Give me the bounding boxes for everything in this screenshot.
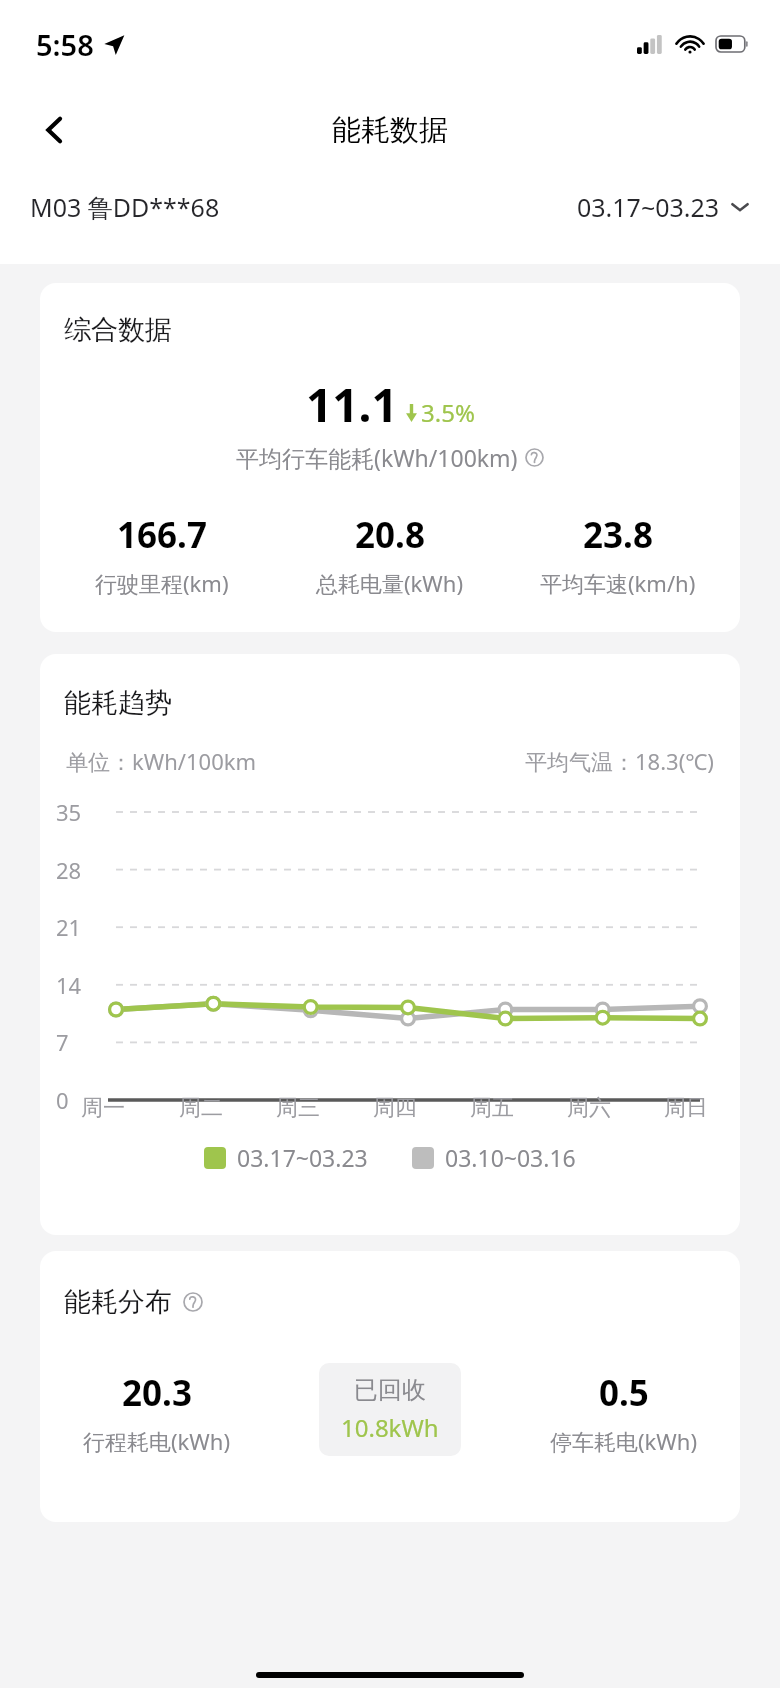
staticText: 7: [56, 1027, 69, 1057]
staticText: 周六: [567, 1094, 611, 1122]
staticText: 28: [56, 855, 82, 885]
staticText: 5:58: [36, 25, 94, 64]
staticText: 平均气温：18.3(℃): [525, 746, 714, 776]
staticText: 周日: [664, 1094, 708, 1122]
staticText: 已回收: [354, 1375, 426, 1405]
staticText: 周二: [179, 1094, 223, 1122]
staticText: 20.8: [355, 511, 425, 559]
staticText: 周四: [373, 1094, 417, 1122]
staticText: M03 鲁DD***68: [30, 190, 220, 224]
staticText: 3.5%: [421, 396, 475, 429]
staticText: 能耗趋势: [64, 686, 172, 720]
staticText: 平均行车能耗(kWh/100km): [236, 442, 518, 473]
staticText: 0.5: [599, 1369, 649, 1417]
staticText: 166.7: [117, 511, 207, 559]
staticText: 周五: [470, 1094, 514, 1122]
staticText: 单位：kWh/100km: [66, 746, 257, 776]
staticText: 23.8: [583, 511, 653, 559]
staticText: 行程耗电(kWh): [83, 1426, 231, 1456]
staticText: 03.17~03.23: [237, 1142, 368, 1173]
button[interactable]: 03.10~03.16: [412, 1142, 576, 1173]
staticText: 14: [56, 970, 82, 1000]
staticText: 总耗电量(kWh): [316, 568, 464, 598]
staticText: 03.17~03.23: [577, 190, 720, 224]
button[interactable]: Back: [26, 101, 84, 159]
staticText: 10.8kWh: [341, 1411, 439, 1444]
staticText: 03.10~03.16: [445, 1142, 576, 1173]
staticText: 周一: [81, 1094, 125, 1122]
staticText: 0: [56, 1085, 69, 1115]
staticText: 能耗分布: [64, 1285, 172, 1319]
staticText: 20.3: [122, 1369, 192, 1417]
staticText: 周三: [276, 1094, 320, 1122]
staticText: 平均车速(km/h): [540, 568, 696, 598]
button[interactable]: 03.17~03.23: [204, 1142, 368, 1173]
staticText: 21: [56, 912, 82, 942]
staticText: 11.1: [306, 373, 398, 436]
staticText: 行驶里程(km): [95, 568, 229, 598]
staticText: 综合数据: [64, 313, 172, 347]
staticText: 停车耗电(kWh): [550, 1426, 698, 1456]
staticText: 35: [56, 797, 82, 827]
button[interactable]: 03.17~03.23: [577, 184, 750, 230]
staticText: 能耗数据: [332, 112, 448, 149]
